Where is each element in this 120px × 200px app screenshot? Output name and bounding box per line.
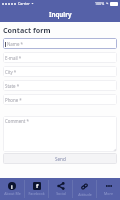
staticText: Comment * <box>5 118 29 124</box>
staticText: City * <box>5 69 17 75</box>
button[interactable]: More <box>97 178 120 200</box>
button[interactable]: Social <box>49 178 72 200</box>
staticText: Name * <box>7 41 23 47</box>
staticText: Contact form <box>3 25 51 35</box>
button[interactable]: Attitude <box>73 178 96 200</box>
button[interactable]: Send <box>3 153 117 164</box>
staticText: f <box>36 182 39 190</box>
staticText: Attitude <box>78 192 92 197</box>
staticText: More <box>104 191 113 196</box>
staticText: State * <box>5 83 20 89</box>
staticText: Inquiry <box>49 10 72 18</box>
button[interactable]: E-mail * <box>3 52 117 63</box>
button[interactable]: City * <box>3 66 117 77</box>
staticText: Carrier <box>18 1 30 6</box>
staticText: Social <box>56 191 66 196</box>
button[interactable]: State * <box>3 80 117 91</box>
staticText: About Me <box>4 191 21 196</box>
staticText: Facebook <box>28 191 45 196</box>
button[interactable]: Phone * <box>3 94 117 105</box>
button[interactable]: Facebook <box>25 178 48 200</box>
button[interactable]: Name * <box>3 38 117 49</box>
staticText: i <box>11 183 13 190</box>
staticText: E-mail * <box>5 55 22 61</box>
staticText: Send <box>55 156 66 162</box>
staticText: 100% <box>95 1 105 6</box>
button[interactable]: Comment * <box>3 116 117 152</box>
button[interactable]: About Me <box>0 178 24 200</box>
staticText: Phone * <box>5 97 22 103</box>
